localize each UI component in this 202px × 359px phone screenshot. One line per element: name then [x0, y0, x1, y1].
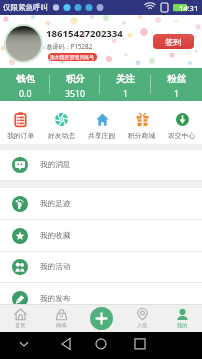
button[interactable]: 我的活动 [0, 252, 202, 282]
button[interactable]: 我的订单 [0, 108, 41, 144]
staticText: 1 [174, 88, 180, 100]
button[interactable]: 好友动态 [41, 108, 82, 144]
staticText: 商城 [56, 322, 67, 329]
staticText: 我的订单 [7, 131, 35, 140]
button[interactable]: 关注 [100, 68, 151, 101]
button[interactable]: 商城 [41, 304, 82, 332]
staticText: 农交中心 [168, 131, 196, 140]
staticText: 共享庄园 [88, 131, 116, 140]
staticText: 入驻 [137, 322, 148, 329]
button[interactable]: Add [90, 307, 113, 330]
button[interactable]: 钱包 [0, 68, 50, 101]
staticText: 18615427202334 [46, 27, 123, 40]
staticText: 签到 [165, 37, 182, 47]
button[interactable]: 添加园区管理员账号 [48, 53, 97, 61]
button[interactable]: 农交中心 [162, 108, 202, 144]
staticText: 积分 [66, 73, 85, 85]
button[interactable]: 入驻 [122, 304, 162, 332]
staticText: 粉丝 [167, 73, 186, 85]
staticText: 我的 [177, 322, 188, 329]
button[interactable]: 我的足迹 [0, 188, 202, 219]
staticText: 3510 [65, 88, 86, 100]
staticText: 我的收藏 [40, 231, 71, 241]
staticText: 钱包 [16, 73, 35, 85]
staticText: 添加园区管理员账号 [50, 54, 95, 60]
staticText: 14:31 [179, 3, 199, 13]
button[interactable]: 共享庄园 [82, 108, 122, 144]
staticText: 积分商城 [128, 131, 156, 140]
staticText: 我的发布 [40, 294, 71, 304]
staticText: 我的足迹 [40, 199, 71, 209]
staticText: 好友动态 [48, 131, 76, 140]
button[interactable]: 签到 [153, 34, 194, 49]
button[interactable]: 积分商城 [122, 108, 162, 144]
staticText: 我的消息 [40, 160, 71, 170]
staticText: 0.0 [19, 88, 32, 100]
button[interactable]: 粉丝 [151, 68, 202, 101]
button[interactable]: 我的消息 [0, 150, 202, 180]
button[interactable]: 我的 [162, 304, 202, 332]
staticText: 首页 [15, 322, 26, 329]
button[interactable]: 我的发布 [0, 283, 202, 314]
staticText: 仅限紧急呼叫 [3, 3, 48, 12]
staticText: 关注 [116, 73, 135, 85]
staticText: 邀请码：P15282 [46, 42, 93, 50]
staticText: 1 [123, 88, 129, 100]
button[interactable]: Avatar [6, 26, 41, 61]
staticText: 我的活动 [40, 262, 71, 272]
button[interactable]: 我的收藏 [0, 220, 202, 251]
button[interactable]: 积分 [50, 68, 100, 101]
button[interactable]: 首页 [0, 304, 41, 332]
